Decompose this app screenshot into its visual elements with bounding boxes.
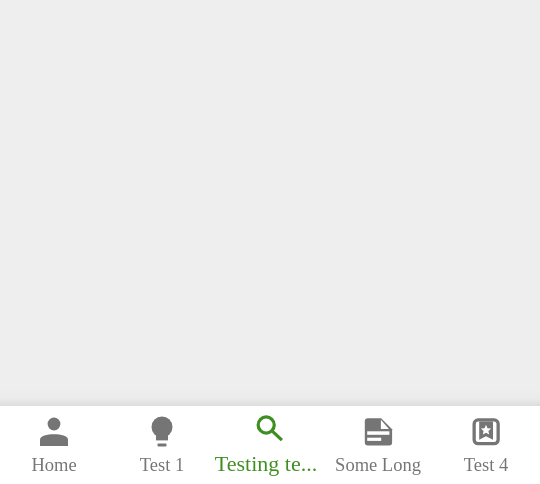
other: Documents	[362, 416, 394, 448]
staticText: Home	[0, 455, 108, 475]
staticText: Test 1	[108, 455, 216, 475]
button[interactable]: Ideas	[108, 406, 216, 484]
staticText: Some Long	[324, 455, 432, 475]
button[interactable]: Search	[216, 406, 324, 484]
button[interactable]: Bookmarks	[432, 406, 540, 484]
other: Profile	[38, 416, 70, 448]
staticText: Testing te...	[212, 451, 320, 475]
other: Search	[254, 416, 286, 448]
other: Ideas	[146, 416, 178, 448]
other: Bookmarks	[470, 416, 502, 448]
button[interactable]: Documents	[324, 406, 432, 484]
staticText: Test 4	[432, 455, 540, 475]
button[interactable]: Profile	[0, 406, 108, 484]
